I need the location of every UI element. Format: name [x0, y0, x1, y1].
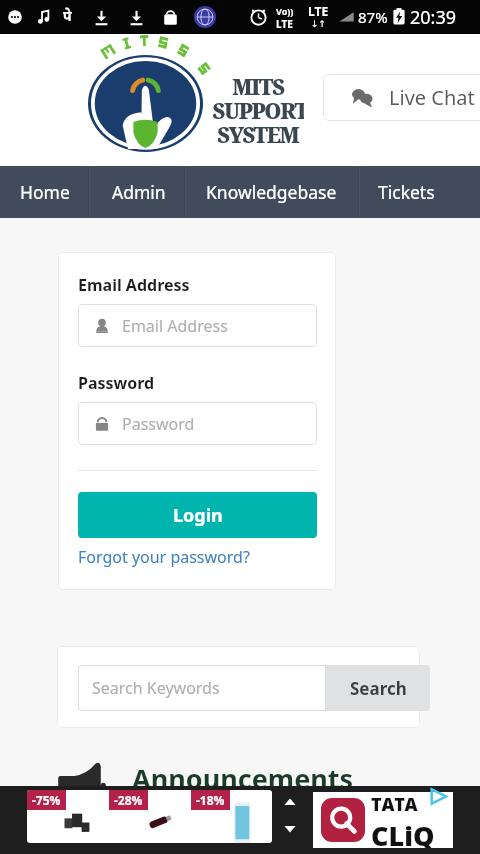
button[interactable]: Forgot your password?: [76, 546, 252, 568]
staticText: Admin: [112, 180, 166, 204]
staticText: Password: [122, 413, 195, 435]
staticText: Home: [20, 180, 70, 204]
button[interactable]: Login: [78, 492, 317, 538]
staticText: 87%: [358, 7, 388, 27]
button[interactable]: Password: [78, 402, 317, 445]
staticText: 20:39: [410, 5, 457, 30]
button[interactable]: Tickets: [357, 166, 456, 218]
staticText: LTE: [308, 3, 329, 19]
button[interactable]: Email Address: [78, 304, 317, 347]
button[interactable]: TATA: [313, 792, 453, 848]
staticText: TATA: [371, 792, 419, 817]
staticText: Vo)): [276, 5, 294, 17]
staticText: Search Keywords: [92, 677, 220, 699]
button[interactable]: Scroll ads: [276, 790, 304, 843]
staticText: Email Address: [78, 274, 190, 296]
button[interactable]: Search: [326, 665, 430, 711]
staticText: MITS: [212, 73, 304, 102]
staticText: CLiQ: [371, 817, 435, 848]
staticText: -28%: [114, 792, 143, 808]
staticText: Search: [350, 677, 407, 700]
staticText: Tickets: [378, 180, 435, 204]
staticText: -18%: [196, 792, 225, 808]
staticText: Email Address: [122, 315, 228, 337]
button[interactable]: Home: [0, 166, 91, 218]
staticText: Knowledgebase: [206, 180, 337, 204]
button[interactable]: -75%: [27, 790, 272, 843]
staticText: SYSTEM: [212, 121, 304, 150]
staticText: Password: [78, 372, 155, 394]
staticText: ↓↑: [311, 19, 327, 29]
button[interactable]: Knowledgebase: [186, 166, 357, 218]
staticText: पे: [63, 6, 72, 25]
staticText: Login: [173, 503, 223, 528]
staticText: Announcements: [132, 760, 354, 797]
staticText: Live Chat: [389, 84, 475, 111]
staticText: Forgot your password?: [78, 546, 250, 568]
staticText: -75%: [32, 792, 61, 808]
button[interactable]: Live Chat: [323, 74, 480, 121]
staticText: SUPPORT: [212, 97, 304, 126]
staticText: LTE: [276, 17, 293, 31]
button[interactable]: Admin: [91, 166, 186, 218]
